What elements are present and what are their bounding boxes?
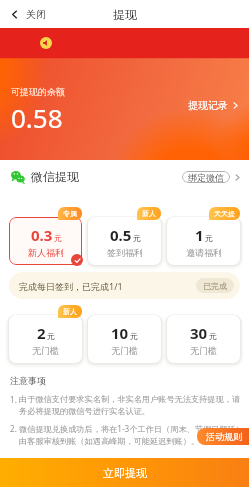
staticText: 30	[190, 323, 208, 343]
staticText: 由于微信支付要求实名制，非实名用户账号无法支持提现，请务必将提现的微信号进行实名…	[19, 394, 245, 416]
button[interactable]: 1	[167, 217, 240, 265]
staticText: 元	[130, 331, 138, 341]
button[interactable]: 2	[9, 315, 82, 363]
staticText: 绑定微信	[188, 172, 224, 183]
staticText: 元	[133, 233, 141, 243]
staticText: 活动规则	[206, 431, 242, 442]
staticText: 元	[54, 233, 62, 243]
button[interactable]: 10	[88, 315, 161, 363]
staticText: 新人	[63, 307, 77, 316]
other: Announcement	[40, 37, 52, 49]
staticText: 提现	[113, 7, 137, 22]
button[interactable]: 0.3	[9, 217, 82, 265]
staticText: 10	[111, 323, 129, 343]
staticText: 微信提现兑换成功后，将在1-3个工作日（周末、节假日顺延）由客服审核到账（如遇高…	[19, 423, 245, 446]
staticText: 元	[205, 233, 213, 243]
staticText: 关闭	[26, 8, 46, 21]
button[interactable]: 活动规则	[197, 428, 249, 445]
staticText: 无门槛	[32, 345, 59, 356]
staticText: 立即提现	[103, 466, 147, 480]
staticText: 元	[47, 331, 55, 341]
button[interactable]: 绑定微信	[182, 171, 241, 183]
button[interactable]: 提现记录	[186, 97, 241, 114]
button[interactable]: 立即提现	[0, 458, 249, 487]
staticText: 完成每日签到，已完成1/1	[19, 280, 123, 292]
staticText: 无门槛	[111, 345, 138, 356]
staticText: 无门槛	[190, 345, 217, 356]
staticText: 邀请福利	[186, 247, 222, 258]
staticText: 提现记录	[188, 99, 228, 112]
button[interactable]: 30	[167, 315, 240, 363]
staticText: 微信提现	[31, 169, 79, 184]
staticText: 签到福利	[107, 247, 143, 258]
staticText: 元	[209, 331, 217, 341]
staticText: 新人福利	[28, 247, 64, 258]
staticText: 可提现的余额	[11, 86, 65, 97]
staticText: 0.58	[11, 100, 63, 135]
staticText: 已完成	[203, 281, 227, 291]
button[interactable]: 关闭	[0, 0, 54, 28]
staticText: 专属	[63, 209, 77, 218]
button[interactable]: 完成每日签到，已完成1/1	[9, 272, 240, 299]
staticText: 注意事项	[10, 375, 46, 386]
staticText: 2.	[10, 423, 19, 434]
staticText: 2	[37, 323, 46, 343]
staticText: 0.5	[110, 225, 132, 245]
button[interactable]: 0.5	[88, 217, 161, 265]
button[interactable]: Announcement	[0, 28, 249, 58]
staticText: 天天提	[214, 209, 235, 218]
staticText: 1	[195, 225, 204, 245]
staticText: 1.	[10, 394, 19, 405]
staticText: 新人	[142, 209, 156, 218]
staticText: 0.3	[31, 225, 53, 245]
